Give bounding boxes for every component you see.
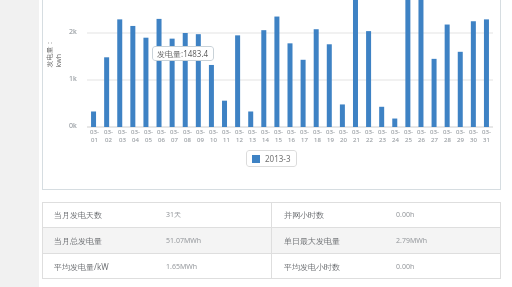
staticText: 单日最大发电量 [284,236,340,246]
staticText: 05 [145,136,152,144]
staticText: 10 [210,136,217,144]
staticText: 03- [183,128,192,136]
staticText: 03- [417,128,426,136]
staticText: 2.79MWh [396,236,428,246]
button[interactable]: 当月发电天数 [42,202,501,227]
staticText: 21 [353,136,360,144]
staticText: 06 [158,136,165,144]
staticText: 2k [69,27,77,37]
staticText: 03- [170,128,179,136]
staticText: 03- [456,128,465,136]
staticText: 08 [184,136,191,144]
staticText: 平均发电小时数 [284,262,340,272]
staticText: 14 [262,136,269,144]
staticText: 03- [482,128,491,136]
staticText: 2013-3 [265,153,291,164]
staticText: 22 [366,136,373,144]
staticText: 03- [157,128,166,136]
staticText: 31 [483,136,490,144]
staticText: 并网小时数 [284,210,324,220]
other: Data tooltip [152,46,214,61]
staticText: 01 [91,136,98,144]
staticText: 24 [392,136,399,144]
staticText: 0.00h [396,262,415,272]
staticText: 平均发电量/kW [54,261,109,272]
staticText: 26 [418,136,425,144]
staticText: 12 [236,136,243,144]
staticText: 09 [197,136,204,144]
staticText: 03- [222,128,231,136]
button[interactable]: 当月总发电量 [42,228,501,253]
staticText: 03- [430,128,439,136]
staticText: 31天 [166,210,182,220]
staticText: 30 [470,136,477,144]
staticText: 03- [404,128,413,136]
staticText: 16 [288,136,295,144]
staticText: 03- [469,128,478,136]
staticText: 03- [209,128,218,136]
staticText: 03- [235,128,244,136]
staticText: 03- [300,128,309,136]
staticText: 28 [444,136,451,144]
staticText: 17 [301,136,308,144]
staticText: 1k [69,74,77,84]
button[interactable]: 平均发电量/kW [42,254,501,279]
staticText: 03- [378,128,387,136]
staticText: 03- [131,128,140,136]
staticText: 发电量:1483.4 [157,48,209,59]
staticText: 03- [443,128,452,136]
staticText: 15 [275,136,282,144]
staticText: 03- [248,128,257,136]
staticText: 当月总发电量 [54,236,102,246]
staticText: 11 [223,136,230,144]
staticText: 03- [391,128,400,136]
staticText: 51.07MWh [166,236,202,246]
staticText: 18 [314,136,321,144]
staticText: 03- [144,128,153,136]
staticText: 03- [104,128,113,136]
staticText: 02 [105,136,112,144]
staticText: 03- [118,128,127,136]
staticText: 03- [90,128,99,136]
staticText: 发电量：kwh [44,27,63,67]
staticText: 19 [327,136,334,144]
staticText: 20 [340,136,347,144]
staticText: 03- [313,128,322,136]
staticText: 当月发电天数 [54,210,102,220]
button[interactable]: 2013-3 [246,150,297,167]
staticText: 03- [287,128,296,136]
staticText: 25 [405,136,412,144]
staticText: 1.65MWh [166,262,198,272]
staticText: 23 [379,136,386,144]
staticText: 03 [119,136,126,144]
staticText: 13 [249,136,256,144]
staticText: 03- [352,128,361,136]
staticText: 03- [339,128,348,136]
staticText: 03- [326,128,335,136]
staticText: 0.00h [396,210,415,220]
staticText: 03- [261,128,270,136]
staticText: 03- [365,128,374,136]
staticText: 0k [69,121,77,131]
staticText: 29 [457,136,464,144]
staticText: 03- [196,128,205,136]
staticText: 27 [431,136,438,144]
staticText: 03- [274,128,283,136]
staticText: 07 [171,136,178,144]
staticText: 04 [132,136,139,144]
